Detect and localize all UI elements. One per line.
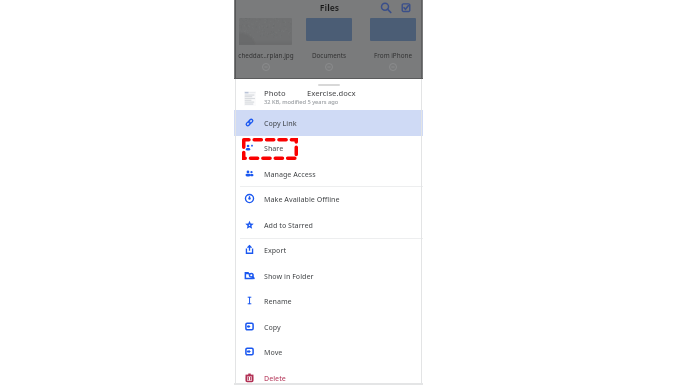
button[interactable] xyxy=(303,16,355,61)
button[interactable]: Delete xyxy=(234,365,423,385)
button[interactable]: Make Available Offline xyxy=(234,186,423,212)
button[interactable]: More options for From iPhone xyxy=(388,62,398,72)
button[interactable]: Move xyxy=(234,339,423,365)
button[interactable]: Copy Link xyxy=(234,110,423,136)
staticText: Documents xyxy=(294,51,364,60)
staticText: Delete xyxy=(264,373,286,383)
button[interactable]: Rename xyxy=(234,288,423,314)
staticText: Move xyxy=(264,347,283,357)
staticText: Manage Access xyxy=(264,169,316,179)
staticText: Photo xyxy=(264,88,286,98)
staticText: Show in Folder xyxy=(264,271,314,281)
button[interactable]: Add to Starred xyxy=(234,212,423,238)
button[interactable]: More options for cheddar…rplan.jpg xyxy=(261,62,271,72)
button[interactable]: Copy xyxy=(234,314,423,340)
staticText: Share xyxy=(264,143,284,153)
staticText: Files xyxy=(306,2,353,14)
staticText: Export xyxy=(264,245,287,255)
button[interactable]: Show in Folder xyxy=(234,263,423,289)
staticText: 32 KB, modified 5 years ago xyxy=(264,98,339,106)
staticText: Copy xyxy=(264,322,281,332)
staticText: Exercise.docx xyxy=(307,88,356,98)
staticText: Copy Link xyxy=(264,118,297,128)
button[interactable]: Manage Access xyxy=(234,161,423,187)
staticText: Make Available Offline xyxy=(264,194,340,204)
button[interactable]: More options for Documents xyxy=(324,62,334,72)
staticText: Add to Starred xyxy=(264,220,313,230)
button[interactable]: Search xyxy=(378,0,392,14)
button[interactable]: Export xyxy=(234,237,423,263)
staticText: From iPhone xyxy=(358,51,428,60)
staticText: Rename xyxy=(264,296,292,306)
button[interactable]: Share xyxy=(234,135,423,161)
button[interactable]: Select all xyxy=(399,1,413,15)
button[interactable] xyxy=(236,16,295,61)
staticText: cheddar…rplan.jpg xyxy=(231,51,301,60)
button[interactable] xyxy=(367,16,419,61)
